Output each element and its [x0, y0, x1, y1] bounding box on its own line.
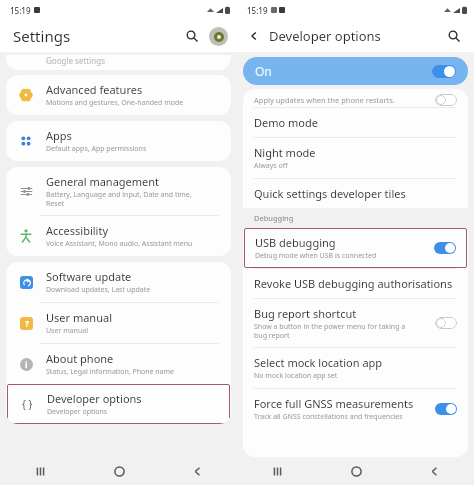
button[interactable]: Google settings	[6, 55, 231, 70]
staticText: Default apps, App permissions	[46, 144, 147, 154]
staticText: Track all GNSS constellations and freque…	[254, 412, 403, 422]
staticText: Software update	[46, 269, 132, 284]
staticText: Advanced features	[46, 82, 143, 97]
staticText: Show a button in the power menu for taki…	[254, 322, 406, 340]
staticText: User manual	[46, 310, 112, 325]
staticText: Voice Assistant, Mono audio, Assistant m…	[46, 239, 193, 249]
button[interactable]: Demo mode	[243, 108, 468, 137]
button[interactable]: Accessibility	[6, 216, 231, 256]
button[interactable]: Apply updates when the phone restarts.	[243, 89, 468, 107]
button[interactable]: { }	[7, 384, 230, 424]
button[interactable]: General management	[6, 167, 231, 215]
button[interactable]: On	[435, 403, 457, 415]
button[interactable]: Back	[245, 27, 263, 45]
staticText: Revoke USB debugging authorisations	[254, 276, 453, 291]
button[interactable]: Software update	[6, 262, 231, 302]
staticText: Developer options	[47, 407, 108, 417]
staticText: About phone	[46, 351, 114, 366]
staticText: Download updates, Last update	[46, 285, 151, 295]
staticText: No mock location app set	[254, 371, 338, 381]
button[interactable]: Home	[105, 457, 133, 485]
staticText: Quick settings developer tiles	[254, 186, 406, 201]
button[interactable]: Select mock location app	[243, 348, 468, 388]
staticText: ?	[25, 318, 29, 329]
staticText: 15:19	[247, 5, 268, 16]
button[interactable]: On	[434, 242, 456, 254]
button[interactable]: Home	[342, 457, 370, 485]
button[interactable]: Recents	[26, 457, 54, 485]
button[interactable]: ?	[6, 303, 231, 343]
button[interactable]: Force full GNSS measurements	[243, 389, 468, 429]
button[interactable]: Revoke USB debugging authorisations	[243, 269, 468, 298]
staticText: Debugging	[254, 213, 294, 223]
button[interactable]: Search	[444, 26, 464, 46]
staticText: On	[255, 63, 272, 79]
button[interactable]: Account	[209, 27, 228, 46]
staticText: Bug report shortcut	[254, 306, 357, 321]
staticText: User manual	[46, 326, 88, 336]
staticText: Night mode	[254, 145, 316, 160]
staticText: General management	[46, 174, 160, 189]
button[interactable]: USB debugging	[244, 228, 467, 268]
button[interactable]: On	[243, 57, 468, 85]
staticText: Settings	[13, 26, 71, 46]
staticText: 15:19	[10, 5, 31, 16]
button[interactable]: Recents	[263, 457, 291, 485]
staticText: Battery, Language and input, Date and ti…	[46, 190, 192, 208]
staticText: i	[25, 359, 28, 370]
button[interactable]: Night mode	[243, 138, 468, 178]
staticText: Always off	[254, 161, 288, 171]
staticText: Force full GNSS measurements	[254, 396, 414, 411]
button[interactable]: Off	[435, 317, 457, 329]
staticText: Debug mode when USB is connected	[255, 251, 377, 261]
staticText: Accessibility	[46, 223, 109, 238]
staticText: { }	[22, 397, 33, 411]
staticText: Developer options	[47, 391, 142, 406]
button[interactable]: Apps	[6, 121, 231, 161]
staticText: Demo mode	[254, 115, 318, 130]
staticText: Google settings	[46, 55, 105, 66]
staticText: USB debugging	[255, 235, 336, 250]
button[interactable]: Back	[183, 457, 211, 485]
button[interactable]: Advanced features	[6, 75, 231, 115]
button[interactable]: Quick settings developer tiles	[243, 179, 468, 208]
button[interactable]: i	[6, 344, 231, 384]
staticText: Apply updates when the phone restarts.	[254, 95, 395, 105]
staticText: Developer options	[269, 27, 381, 45]
button[interactable]: Off	[435, 94, 457, 106]
staticText: Select mock location app	[254, 355, 383, 370]
button[interactable]: Bug report shortcut	[243, 299, 468, 347]
staticText: Motions and gestures, One-handed mode	[46, 98, 184, 108]
button[interactable]: Search	[182, 26, 202, 46]
staticText: Status, Legal information, Phone name	[46, 367, 175, 377]
button[interactable]: Back	[420, 457, 448, 485]
staticText: Apps	[46, 128, 72, 143]
